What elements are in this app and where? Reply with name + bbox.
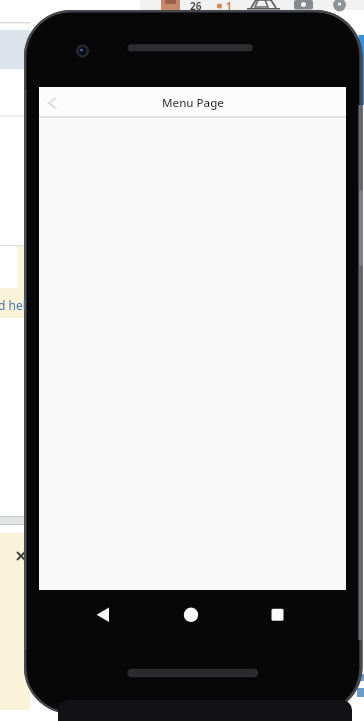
button[interactable] (92, 603, 116, 627)
staticText: 1 (226, 0, 232, 13)
button[interactable] (14, 546, 29, 561)
button[interactable] (179, 603, 203, 627)
staticText: d hel (0, 297, 26, 313)
staticText: Menu Page (162, 95, 224, 111)
button[interactable] (44, 92, 66, 114)
button[interactable] (265, 603, 289, 627)
staticText: 26 (190, 0, 202, 13)
